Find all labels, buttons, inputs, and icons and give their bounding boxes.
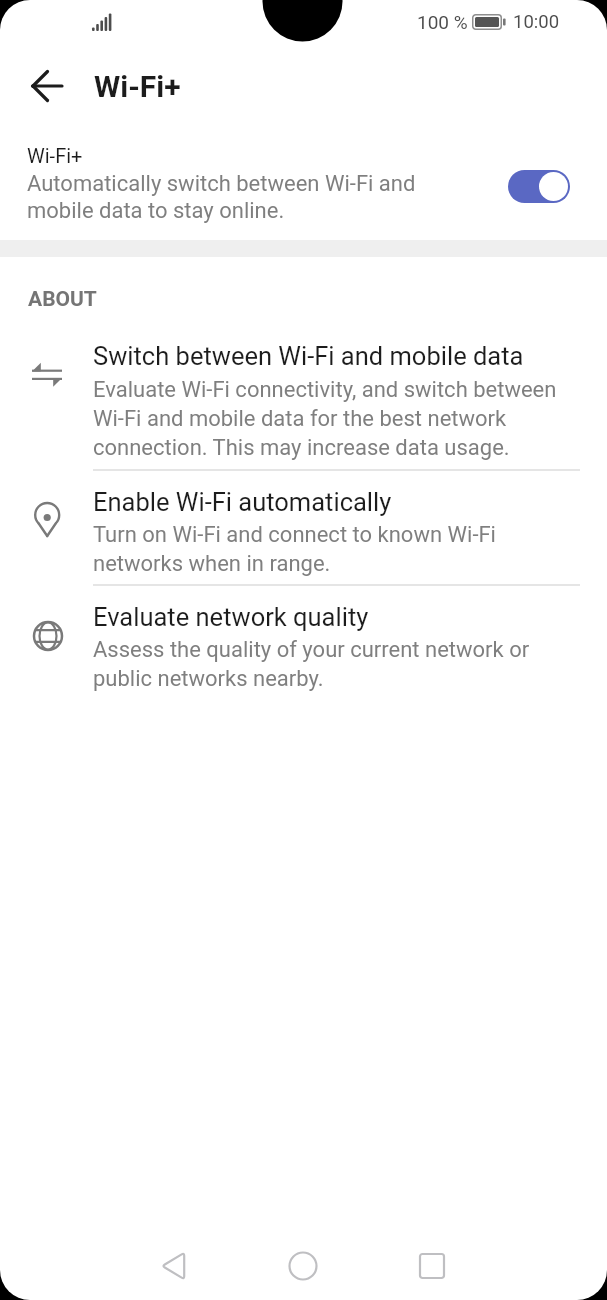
button[interactable]: Wi-Fi+ (0, 130, 607, 240)
staticText: Assess the quality of your current netwo… (93, 637, 530, 691)
button[interactable]: Evaluate network quality (0, 584, 607, 700)
staticText: 10:00 (513, 11, 560, 33)
button[interactable] (16, 55, 78, 117)
button[interactable] (508, 170, 570, 203)
staticText: Enable Wi-Fi automatically (93, 487, 392, 517)
button[interactable] (273, 1238, 333, 1294)
staticText: ABOUT (28, 287, 97, 312)
button[interactable]: Switch between Wi-Fi and mobile data (0, 331, 607, 469)
staticText: Turn on Wi-Fi and connect to known Wi-Fi… (93, 522, 496, 576)
staticText: Switch between Wi-Fi and mobile data (93, 341, 524, 371)
staticText: Wi-Fi+ (27, 144, 83, 167)
staticText: Wi-Fi+ (94, 69, 181, 104)
staticText: Evaluate network quality (93, 602, 369, 632)
button[interactable] (402, 1238, 462, 1294)
button[interactable]: Enable Wi-Fi automatically (0, 470, 607, 583)
staticText: 100 % (417, 11, 468, 33)
staticText: Automatically switch between Wi-Fi and m… (27, 171, 416, 224)
button[interactable] (145, 1238, 205, 1294)
staticText: Evaluate Wi-Fi connectivity, and switch … (93, 377, 557, 460)
